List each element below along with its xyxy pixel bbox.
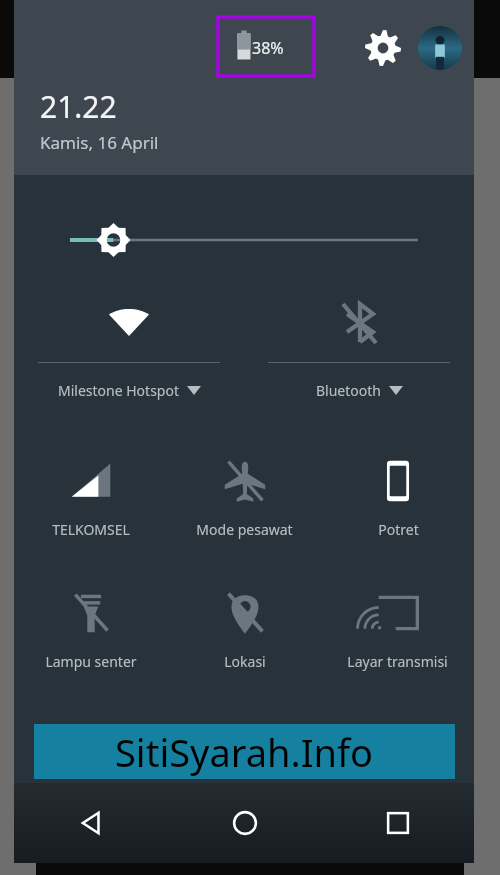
button[interactable]: TELKOMSEL [14,440,168,572]
staticText: Kamis, 16 April [40,131,159,154]
button[interactable]: Bluetooth [244,288,474,428]
staticText: 21.22 [40,86,117,127]
button[interactable]: User profile [418,26,462,70]
button[interactable]: Milestone Hotspot [14,288,244,428]
button[interactable]: Layar transmisi [321,572,474,704]
button[interactable]: Settings [360,25,406,71]
button[interactable]: Back [14,783,168,863]
staticText: Lokasi [224,652,266,671]
staticText: Potret [378,520,419,539]
button[interactable]: Lokasi [168,572,321,704]
staticText: Bluetooth [316,381,381,400]
button[interactable]: Home [168,783,321,863]
staticText: Mode pesawat [196,520,293,539]
button[interactable]: Brightness [14,175,474,290]
staticText: Layar transmisi [347,652,448,671]
staticText: TELKOMSEL [52,520,130,539]
button[interactable]: Mode pesawat [168,440,321,572]
staticText: Milestone Hotspot [58,381,179,400]
button[interactable]: Hotspot [168,704,321,784]
staticText: Lampu senter [45,652,137,671]
button[interactable]: Potret [321,440,474,572]
staticText: 38% [252,37,284,59]
staticText: SitiSyarah.Info [115,726,374,778]
button[interactable]: Lampu senter [14,572,168,704]
button[interactable]: Battery 38 percent [218,17,314,76]
button[interactable]: Recents [321,783,474,863]
